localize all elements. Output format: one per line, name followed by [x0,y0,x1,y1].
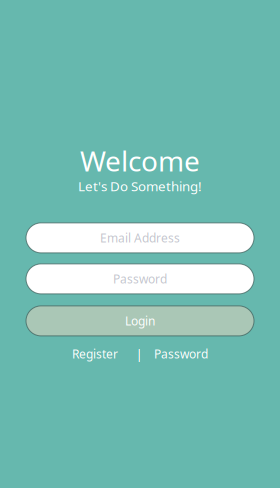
staticText: Register [72,346,118,362]
staticText: | [135,345,142,363]
staticText: Email Address [100,230,180,246]
button[interactable]: Email Address [26,223,254,253]
staticText: Welcome [80,142,200,179]
button[interactable]: Register [72,346,118,362]
staticText: Login [125,313,155,329]
button[interactable]: Login [26,306,254,336]
button[interactable]: Password [154,346,208,362]
staticText: Password [113,271,167,287]
staticText: Let's Do Something! [78,177,202,195]
button[interactable]: Password [26,264,254,294]
staticText: Password [154,346,208,362]
